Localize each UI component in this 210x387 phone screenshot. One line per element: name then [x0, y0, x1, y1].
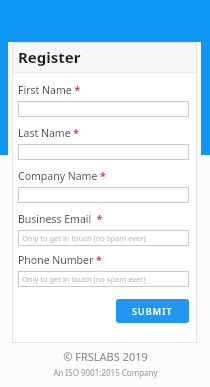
staticText: An ISO 9001:2015 Company [53, 367, 158, 378]
staticText: Only to get in touch (no spam ever) [22, 233, 146, 243]
staticText: Last Name * [18, 126, 79, 140]
staticText: Phone Number * [18, 253, 102, 267]
button[interactable]: Only to get in touch (no spam ever) [18, 271, 189, 287]
staticText: Register [18, 47, 81, 67]
staticText: © FRSLABS 2019 [63, 349, 148, 364]
staticText: First Name * [18, 83, 81, 97]
button[interactable]: SUBMIT [116, 299, 189, 323]
button[interactable] [18, 101, 189, 117]
button[interactable] [18, 144, 189, 160]
staticText: SUBMIT [132, 305, 173, 317]
staticText: Business Email * [18, 212, 103, 226]
staticText: Company Name * [18, 169, 106, 183]
button[interactable] [18, 187, 189, 203]
button[interactable]: Only to get in touch (no spam ever) [18, 230, 189, 246]
staticText: Only to get in touch (no spam ever) [22, 274, 146, 284]
